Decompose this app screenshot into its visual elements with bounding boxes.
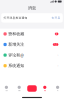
button[interactable]: 系统通知 — [0, 60, 64, 71]
button[interactable]: 首页 — [0, 86, 13, 91]
staticText: › — [57, 53, 58, 57]
staticText: 赞和收藏 — [8, 31, 24, 36]
staticText: 系统通知 — [8, 63, 24, 68]
staticText: 首页 — [5, 90, 7, 91]
button[interactable]: 赞和收藏 — [0, 29, 64, 39]
staticText: 新增关注 — [8, 42, 24, 47]
staticText: 3 — [56, 32, 58, 36]
staticText: › — [57, 64, 58, 67]
button[interactable]: 新增关注 — [0, 39, 64, 50]
staticText: 购物 — [18, 90, 20, 91]
button[interactable]: 我 — [51, 86, 64, 91]
staticText: 打开消息推送通知 — [4, 16, 28, 20]
staticText: 12 — [54, 43, 58, 46]
button[interactable]: Post — [27, 85, 37, 92]
staticText: 评论和@ — [8, 52, 24, 58]
button[interactable]: 评论和@ — [0, 50, 64, 60]
staticText: 消息 — [28, 5, 36, 10]
staticText: 去开启 — [51, 16, 60, 20]
button[interactable]: 打开消息推送通知 — [1, 13, 63, 23]
button[interactable]: 购物 — [13, 86, 26, 91]
button[interactable]: 消息 — [38, 86, 51, 91]
